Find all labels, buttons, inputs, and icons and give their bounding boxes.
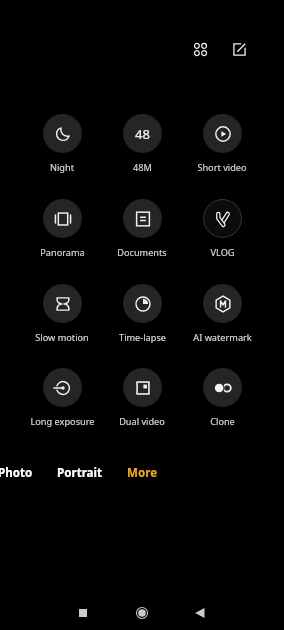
button[interactable]: Portrait [49,459,111,487]
button[interactable]: Short video [182,111,262,179]
staticText: Time-lapse [119,331,166,344]
button[interactable]: Photo [0,459,41,487]
button[interactable]: AI watermark [182,281,262,349]
button[interactable]: Edit modes [222,32,256,66]
staticText: Clone [210,415,235,428]
staticText: Dual video [119,415,165,428]
staticText: Short video [197,161,247,174]
button[interactable]: Slow motion [22,281,102,349]
staticText: AI watermark [193,331,252,344]
button[interactable]: Dual video [102,365,182,433]
button[interactable]: Clone [182,365,262,433]
button[interactable]: VLOG [182,196,262,264]
button[interactable]: Documents [102,196,182,264]
button[interactable]: Recents [67,597,99,629]
staticText: Documents [117,246,167,259]
button[interactable]: More [119,459,166,487]
staticText: Night [50,161,74,174]
button[interactable]: Night [22,111,102,179]
button[interactable]: Panorama [22,196,102,264]
staticText: VLOG [210,246,235,259]
staticText: Long exposure [30,415,95,428]
button[interactable]: Home [126,597,158,629]
staticText: More [127,465,158,481]
staticText: 48 [135,125,150,143]
button[interactable]: 48 [102,111,182,179]
staticText: Portrait [57,465,103,481]
staticText: Panorama [40,246,85,259]
button[interactable]: Mode layout [183,32,217,66]
button[interactable]: Time-lapse [102,281,182,349]
staticText: Slow motion [35,331,89,344]
staticText: Photo [0,465,33,481]
staticText: 48M [133,161,152,174]
button[interactable]: Long exposure [22,365,102,433]
button[interactable]: Back [184,597,216,629]
